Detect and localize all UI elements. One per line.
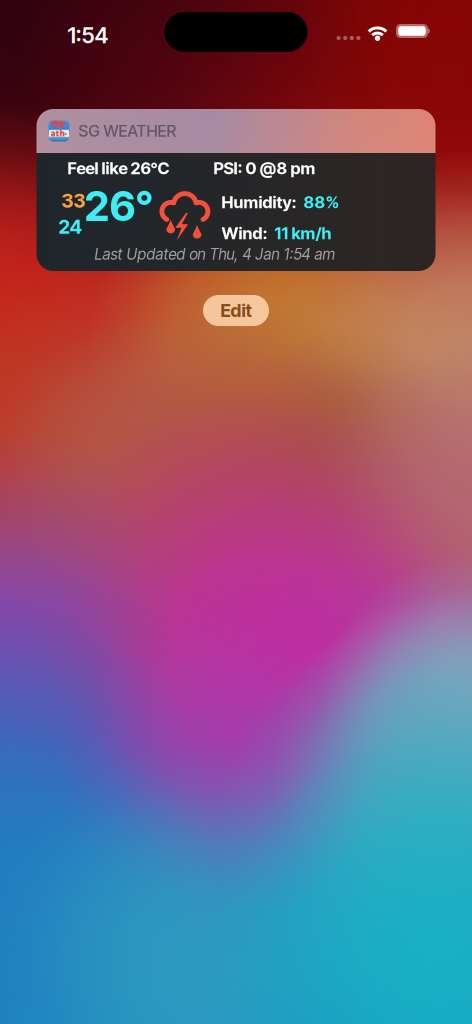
button[interactable]: SG bbox=[36, 109, 435, 271]
staticText: 26° bbox=[84, 181, 153, 231]
staticText: Feel like 26°C bbox=[67, 158, 169, 178]
staticText: 1:54 bbox=[67, 22, 108, 49]
button[interactable]: Edit bbox=[203, 295, 269, 326]
staticText: Wind: bbox=[221, 223, 267, 243]
staticText: SG bbox=[53, 119, 64, 130]
staticText: 88% bbox=[303, 192, 339, 212]
staticText: SG WEATHER bbox=[78, 121, 176, 141]
staticText: 33 bbox=[61, 189, 85, 212]
staticText: Edit bbox=[220, 300, 251, 321]
staticText: 11 km/h bbox=[274, 223, 331, 243]
staticText: Last Updated on Thu, 4 Jan 1:54 am bbox=[94, 245, 335, 263]
staticText: 24 bbox=[58, 215, 81, 238]
staticText: Weather bbox=[50, 117, 67, 149]
staticText: Humidity: bbox=[221, 192, 296, 212]
staticText: PSI: 0 @8 pm bbox=[213, 158, 315, 178]
